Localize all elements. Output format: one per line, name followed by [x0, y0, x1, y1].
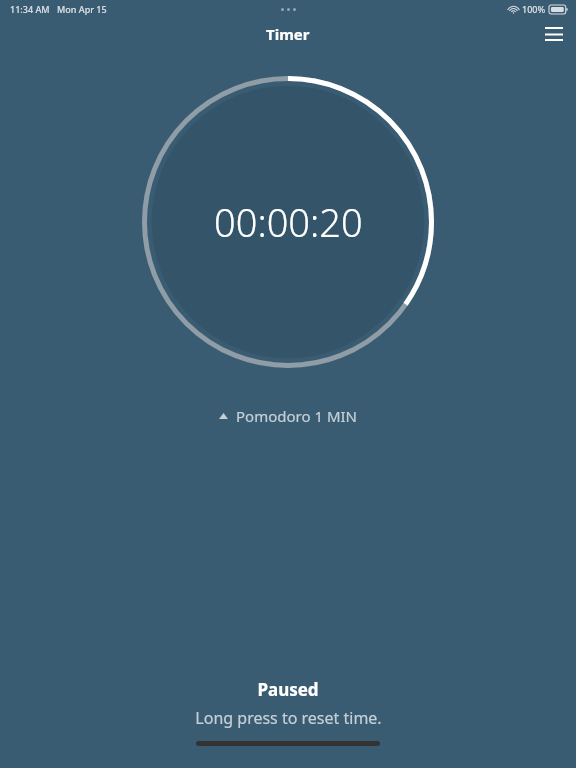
staticText: 00:00:20 [214, 196, 363, 248]
staticText: Long press to reset time. [195, 707, 382, 729]
staticText: 100% [522, 3, 546, 15]
staticText: Paused [257, 678, 319, 701]
button[interactable]: Timer dial, paused at 00:00:20 [142, 76, 434, 368]
staticText: Pomodoro 1 MIN [236, 406, 357, 426]
staticText: 11:34 AM [10, 3, 50, 15]
button[interactable]: Menu [532, 18, 576, 50]
staticText: Mon Apr 15 [57, 3, 107, 15]
staticText: Timer [266, 24, 310, 44]
button[interactable]: Pomodoro 1 MIN [211, 402, 365, 430]
